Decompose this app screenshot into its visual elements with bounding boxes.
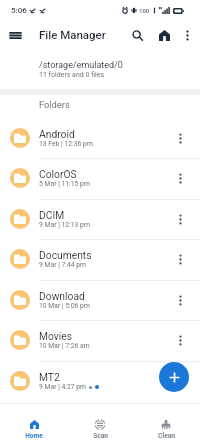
button[interactable]: Android: [0, 118, 200, 158]
staticText: 13 Feb | 12:36 pm: [39, 140, 93, 148]
staticText: Documents: [39, 249, 92, 261]
button[interactable]: Item options: [173, 333, 188, 348]
button[interactable]: Movies: [0, 320, 200, 360]
button[interactable]: Item options: [173, 374, 188, 389]
staticText: /storage/emulated/0: [39, 60, 123, 71]
button[interactable]: Clean: [134, 403, 198, 445]
staticText: Home: [25, 432, 43, 440]
button[interactable]: DCIM: [0, 199, 200, 239]
button[interactable]: Menu: [4, 24, 27, 47]
staticText: Movies: [39, 330, 73, 342]
staticText: Download: [39, 290, 85, 302]
staticText: DCIM: [39, 209, 65, 221]
button[interactable]: ColorOS: [0, 158, 200, 198]
staticText: File Manager: [39, 28, 106, 41]
button[interactable]: Add: [159, 362, 189, 392]
button[interactable]: Scan: [68, 403, 132, 445]
staticText: 10 Mar | 5:06 pm: [39, 302, 90, 310]
staticText: Android: [39, 128, 75, 140]
staticText: 9 Mar | 12:13 pm: [39, 221, 90, 229]
staticText: Folders: [39, 99, 70, 110]
button[interactable]: Item options: [173, 131, 188, 146]
staticText: 5 Mar | 11:15 pm: [39, 180, 90, 188]
button[interactable]: Item options: [173, 171, 188, 186]
button[interactable]: More options: [176, 24, 198, 46]
button[interactable]: Item options: [173, 293, 188, 308]
button[interactable]: Item options: [173, 252, 188, 267]
staticText: 100: [139, 7, 150, 14]
button[interactable]: MT2: [0, 361, 200, 401]
button[interactable]: Documents: [0, 239, 200, 279]
button[interactable]: Home: [153, 24, 176, 47]
button[interactable]: Item options: [173, 212, 188, 227]
button[interactable]: Search: [126, 24, 149, 47]
staticText: ColorOS: [39, 168, 77, 180]
staticText: Clean: [158, 432, 175, 440]
staticText: 9 Mar | 4:27 pm: [39, 383, 87, 391]
button[interactable]: Home: [2, 403, 66, 445]
staticText: 9 Mar | 7:44 pm: [39, 261, 87, 269]
staticText: Scan: [93, 432, 108, 440]
staticText: MT2: [39, 371, 60, 383]
staticText: 5:06: [11, 6, 27, 15]
staticText: 11 folders and 0 files: [39, 71, 105, 79]
staticText: 10 Mar | 7:26 am: [39, 342, 90, 350]
button[interactable]: Download: [0, 280, 200, 320]
